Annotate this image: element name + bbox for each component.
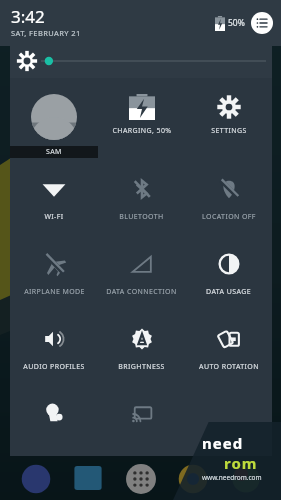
- staticText: DATA USAGE: [206, 287, 251, 297]
- staticText: SAM: [46, 147, 62, 157]
- button[interactable]: LOCATION OFF: [185, 158, 272, 233]
- button[interactable]: DATA USAGE: [185, 233, 272, 308]
- button[interactable]: none: [185, 383, 272, 456]
- staticText: 50%: [228, 17, 245, 29]
- button[interactable]: AIRPLANE MODE: [10, 233, 98, 308]
- staticText: 3:42: [11, 5, 45, 28]
- staticText: AIRPLANE MODE: [24, 287, 85, 297]
- staticText: CHARGING, 50%: [112, 126, 172, 136]
- button[interactable]: WI-FI: [10, 158, 98, 233]
- staticText: AUDIO PROFILES: [23, 362, 85, 372]
- staticText: rom: [224, 453, 258, 473]
- staticText: SAT, FEBRUARY 21: [11, 28, 81, 38]
- button[interactable]: flash: [10, 383, 98, 456]
- staticText: LOCATION OFF: [202, 212, 256, 222]
- button[interactable]: SETTINGS: [185, 80, 272, 158]
- button[interactable]: SAM: [10, 80, 98, 158]
- button[interactable]: AUDIO PROFILES: [10, 308, 98, 383]
- button[interactable]: Brightness: [16, 50, 38, 72]
- button[interactable]: Notifications: [251, 12, 273, 34]
- button[interactable]: CHARGING, 50%: [98, 80, 185, 158]
- staticText: www.needrom.com: [202, 473, 262, 482]
- staticText: WI-FI: [44, 212, 64, 222]
- staticText: DATA CONNECTION: [106, 287, 177, 297]
- button[interactable]: cast: [98, 383, 185, 456]
- button[interactable]: AUTO ROTATION: [185, 308, 272, 383]
- button[interactable]: BRIGHTNESS: [98, 308, 185, 383]
- button[interactable]: BLUETOOTH: [98, 158, 185, 233]
- button[interactable]: DATA CONNECTION: [98, 233, 185, 308]
- staticText: BLUETOOTH: [119, 212, 164, 222]
- staticText: AUTO ROTATION: [199, 362, 259, 372]
- staticText: SETTINGS: [211, 126, 247, 136]
- staticText: BRIGHTNESS: [118, 362, 165, 372]
- staticText: need: [202, 433, 244, 453]
